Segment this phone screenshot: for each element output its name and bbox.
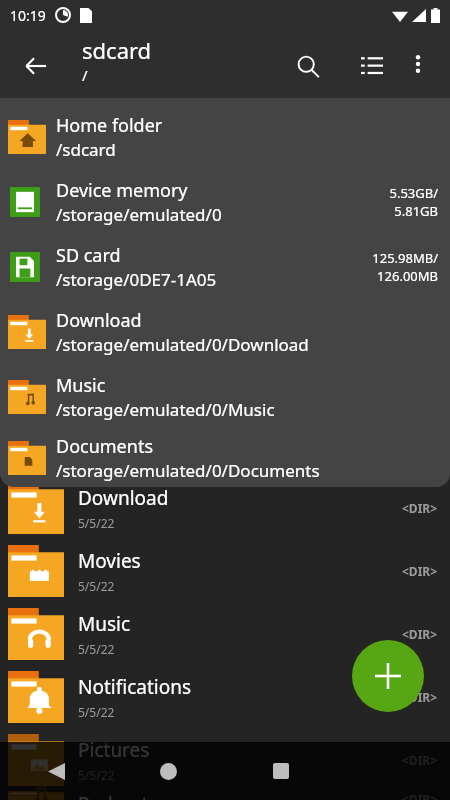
staticText: 5.81GB [394,202,438,220]
staticText: 5.53GB/ [389,184,438,202]
staticText: 5/5/22 [78,641,115,657]
staticText: <DIR> [402,791,438,800]
staticText: Home folder [56,113,163,138]
button[interactable]: SD card [0,234,450,299]
staticText: Download [56,308,142,333]
button[interactable]: Home folder [0,104,450,169]
staticText: 10:19 [10,6,46,25]
button[interactable]: More options [398,44,438,84]
staticText: /storage/emulated/0/Documents [56,459,320,482]
staticText: sdcard [82,35,152,65]
button[interactable]: sdcard [82,35,282,85]
button[interactable]: Download [0,476,450,539]
staticText: <DIR> [402,752,438,768]
staticText: 5/5/22 [78,704,115,720]
staticText: Documents [56,434,154,459]
staticText: <DIR> [402,689,438,705]
button[interactable]: Notifications [0,665,450,728]
button[interactable]: Back [14,44,58,88]
button[interactable]: Home [112,742,224,800]
staticText: /storage/0DE7-1A05 [56,268,217,291]
staticText: /storage/emulated/0 [56,203,222,226]
staticText: <DIR> [402,626,438,642]
button[interactable]: Documents [0,429,450,487]
staticText: Music [56,373,106,398]
staticText: /storage/emulated/0/Download [56,333,309,356]
staticText: Music [78,611,131,637]
staticText: /storage/emulated/0/Music [56,398,275,421]
staticText: <DIR> [402,563,438,579]
staticText: 126.00MB [377,267,438,285]
staticText: SD card [56,243,121,268]
staticText: Download [78,485,169,511]
staticText: /sdcard [56,138,116,161]
staticText: Pictures [78,737,150,763]
staticText: 5/5/22 [78,767,115,783]
staticText: Podcasts [78,791,158,800]
button[interactable]: Add [352,640,424,712]
button[interactable]: Download [0,299,450,364]
button[interactable]: Pictures [0,728,450,791]
staticText: 5/5/22 [78,578,115,594]
button[interactable]: Recent apps [224,742,337,800]
button[interactable]: Movies [0,539,450,602]
staticText: Device memory [56,178,188,203]
staticText: / [82,65,88,85]
staticText: <DIR> [402,500,438,516]
button[interactable]: View mode [350,44,394,88]
staticText: 125.98MB/ [372,249,438,267]
button[interactable]: Search [286,44,330,88]
button[interactable]: Podcasts [0,791,450,800]
staticText: Notifications [78,674,192,700]
button[interactable]: Back [0,742,112,800]
staticText: 5/5/22 [78,515,115,531]
button[interactable]: Music [0,602,450,665]
button[interactable]: Music [0,364,450,429]
button[interactable]: Device memory [0,169,450,234]
staticText: Movies [78,548,141,574]
